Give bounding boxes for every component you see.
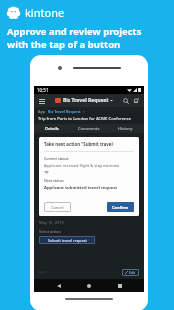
button[interactable]: Details: [34, 124, 70, 133]
button[interactable]: Submit travel request: [39, 236, 95, 244]
staticText: Trip from Paris to London for ACME Confe…: [38, 116, 140, 122]
staticText: App: [38, 109, 46, 114]
button[interactable]: Menu: [37, 96, 47, 106]
staticText: 1 / 1: [39, 270, 46, 275]
staticText: Select action: [39, 229, 61, 234]
button[interactable]: Search: [121, 96, 131, 106]
staticText: >: [83, 109, 86, 114]
button[interactable]: Home: [83, 280, 95, 292]
staticText: Cancel: [51, 205, 64, 210]
button[interactable]: Back: [53, 280, 65, 292]
button[interactable]: Cancel: [44, 202, 71, 212]
staticText: kintone: [25, 5, 65, 20]
staticText: Next status: [44, 178, 64, 183]
staticText: Biz Travel Request: [63, 97, 109, 104]
staticText: 10:51: [37, 87, 49, 93]
staticText: Comments: [78, 126, 100, 131]
staticText: Approve and review projects: [7, 25, 142, 38]
staticText: Applicant submitted travel request: [44, 185, 118, 191]
staticText: Submit travel request: [48, 238, 87, 243]
button[interactable]: Notifications: [131, 96, 141, 106]
staticText: Current status: [44, 156, 69, 161]
button[interactable]: Recents: [114, 280, 126, 292]
button[interactable]: Confirm: [107, 202, 134, 212]
button[interactable]: Comments: [70, 124, 107, 133]
staticText: Confirm: [112, 205, 129, 210]
staticText: May 15, 2019: [39, 220, 64, 225]
staticText: Applicant received flight & stay estimat…: [44, 163, 120, 168]
staticText: Biz Travel Request: [48, 109, 81, 114]
staticText: with the tap of a button: [7, 38, 121, 51]
button[interactable]: History: [107, 124, 144, 133]
button[interactable]: Edit: [122, 269, 139, 276]
staticText: Take next action "Submit travel request"…: [44, 141, 134, 147]
staticText: History: [118, 126, 133, 131]
staticText: Details: [45, 126, 59, 131]
staticText: Edit: [129, 270, 136, 275]
